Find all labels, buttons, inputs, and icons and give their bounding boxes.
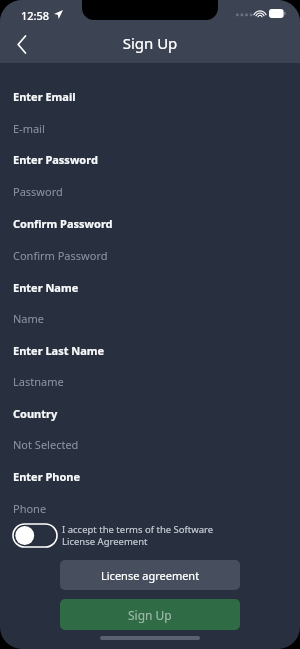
staticText: Confirm Password xyxy=(13,248,108,263)
staticText: Not Selected xyxy=(13,437,79,452)
staticText: Confirm Password xyxy=(13,216,113,231)
staticText: Enter Name xyxy=(13,280,79,295)
staticText: Sign Up xyxy=(128,607,172,623)
button[interactable]: Back xyxy=(4,26,40,62)
staticText: Country xyxy=(13,406,58,421)
button[interactable]: I accept the terms of the Software Licen… xyxy=(13,523,237,548)
staticText: Enter Password xyxy=(13,152,98,167)
staticText: Phone xyxy=(13,501,47,516)
staticText: Sign Up xyxy=(0,33,300,53)
staticText: License agreement xyxy=(101,568,200,583)
staticText: Password xyxy=(13,184,63,199)
button[interactable]: License agreement xyxy=(60,560,240,590)
staticText: I accept the terms of the Software Licen… xyxy=(62,523,237,548)
staticText: Enter Email xyxy=(13,89,76,104)
staticText: Lastname xyxy=(13,374,64,389)
staticText: Name xyxy=(13,311,45,326)
staticText: 12:58 xyxy=(21,8,50,23)
staticText: Enter Phone xyxy=(13,469,81,484)
staticText: E-mail xyxy=(13,121,45,136)
staticText: Enter Last Name xyxy=(13,343,105,358)
button[interactable]: Sign Up xyxy=(60,599,240,630)
